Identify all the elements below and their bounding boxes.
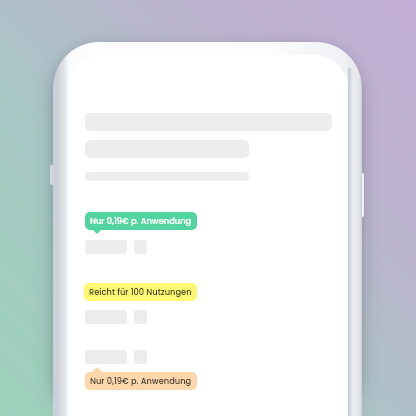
staticText: Reicht für 100 Nutzungen [89, 286, 192, 298]
button[interactable]: Nur 0,19€ p. Anwendung [85, 212, 197, 230]
button[interactable]: Nur 0,19€ p. Anwendung [85, 372, 197, 390]
button[interactable]: Reicht für 100 Nutzungen [84, 283, 197, 301]
staticText: Nur 0,19€ p. Anwendung [90, 375, 192, 387]
staticText: Nur 0,19€ p. Anwendung [90, 215, 192, 227]
